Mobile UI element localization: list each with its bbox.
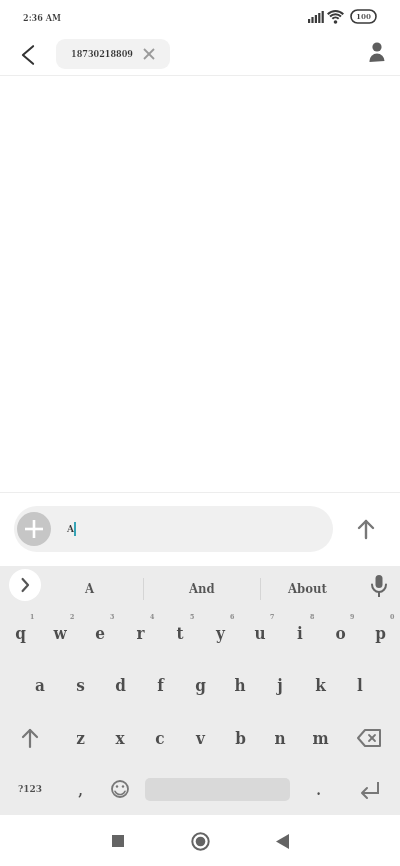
button[interactable]: k [300, 661, 340, 712]
staticText: . [316, 781, 321, 799]
staticText: u [254, 623, 266, 643]
button[interactable]: z [60, 712, 100, 763]
button[interactable] [264, 823, 300, 859]
staticText: And [189, 581, 215, 596]
button[interactable]: f [140, 661, 180, 712]
button[interactable]: v [180, 712, 220, 763]
staticText: p [375, 623, 386, 643]
button[interactable] [140, 763, 295, 815]
staticText: 18730218809 [71, 49, 133, 60]
button[interactable] [9, 569, 41, 601]
staticText: x [115, 728, 125, 748]
staticText: y [216, 623, 225, 643]
button[interactable] [362, 38, 392, 70]
staticText: i [297, 623, 303, 643]
staticText: m [312, 728, 329, 748]
button[interactable]: A [14, 506, 333, 552]
button[interactable] [348, 511, 384, 547]
staticText: l [357, 675, 363, 695]
staticText: b [235, 728, 246, 748]
button[interactable] [182, 823, 218, 859]
staticText: 7 [270, 612, 275, 620]
staticText: 2 [70, 612, 75, 620]
button[interactable]: ?123 [0, 763, 60, 815]
staticText: ?123 [18, 783, 43, 795]
staticText: f [157, 675, 164, 695]
button[interactable]: l [340, 661, 380, 712]
button[interactable]: b [220, 712, 260, 763]
button[interactable]: a [20, 661, 60, 712]
staticText: , [78, 781, 83, 799]
staticText: 5 [190, 612, 195, 620]
button[interactable] [362, 571, 396, 605]
staticText: z [76, 728, 85, 748]
button[interactable]: , [60, 763, 100, 815]
button[interactable]: u [240, 610, 280, 661]
button[interactable]: . [295, 763, 341, 815]
staticText: t [176, 623, 184, 643]
button[interactable]: t [160, 610, 200, 661]
staticText: a [35, 675, 45, 695]
button[interactable]: r [120, 610, 160, 661]
staticText: r [136, 623, 145, 643]
button[interactable]: q [0, 610, 40, 661]
staticText: c [155, 728, 165, 748]
button[interactable]: e [80, 610, 120, 661]
button[interactable]: w [40, 610, 80, 661]
staticText: 8 [310, 612, 315, 620]
button[interactable]: o [320, 610, 360, 661]
button[interactable]: And [144, 566, 260, 610]
staticText: 100 [350, 11, 377, 24]
staticText: h [234, 675, 246, 695]
button[interactable]: h [220, 661, 260, 712]
staticText: k [315, 675, 326, 695]
staticText: o [335, 623, 346, 643]
button[interactable] [341, 763, 400, 815]
button[interactable]: 18730218809 [56, 39, 170, 69]
staticText: s [76, 675, 85, 695]
button[interactable]: j [260, 661, 300, 712]
staticText: A [85, 581, 95, 596]
button[interactable] [100, 763, 140, 815]
button[interactable]: x [100, 712, 140, 763]
button[interactable]: A [52, 566, 128, 610]
button[interactable]: About [261, 566, 353, 610]
staticText: q [15, 623, 26, 643]
staticText: A [67, 523, 74, 535]
button[interactable] [340, 712, 400, 763]
button[interactable]: y [200, 610, 240, 661]
button[interactable] [12, 38, 44, 72]
staticText: About [288, 581, 327, 596]
staticText: 2:36 AM [23, 13, 61, 24]
staticText: j [277, 675, 283, 695]
staticText: 9 [350, 612, 355, 620]
button[interactable]: s [60, 661, 100, 712]
button[interactable] [17, 512, 51, 546]
staticText: e [95, 623, 105, 643]
button[interactable]: n [260, 712, 300, 763]
staticText: g [195, 675, 206, 695]
staticText: v [196, 728, 205, 748]
button[interactable]: i [280, 610, 320, 661]
button[interactable]: c [140, 712, 180, 763]
button[interactable]: d [100, 661, 140, 712]
staticText: n [274, 728, 286, 748]
staticText: 4 [150, 612, 155, 620]
button[interactable] [100, 823, 136, 859]
staticText: w [53, 623, 67, 643]
staticText: 1 [30, 612, 35, 620]
staticText: 3 [110, 612, 115, 620]
button[interactable]: p [360, 610, 400, 661]
button[interactable]: m [300, 712, 340, 763]
button[interactable] [0, 712, 60, 763]
staticText: 0 [390, 612, 395, 620]
staticText: d [115, 675, 126, 695]
button[interactable]: g [180, 661, 220, 712]
staticText: 6 [230, 612, 235, 620]
